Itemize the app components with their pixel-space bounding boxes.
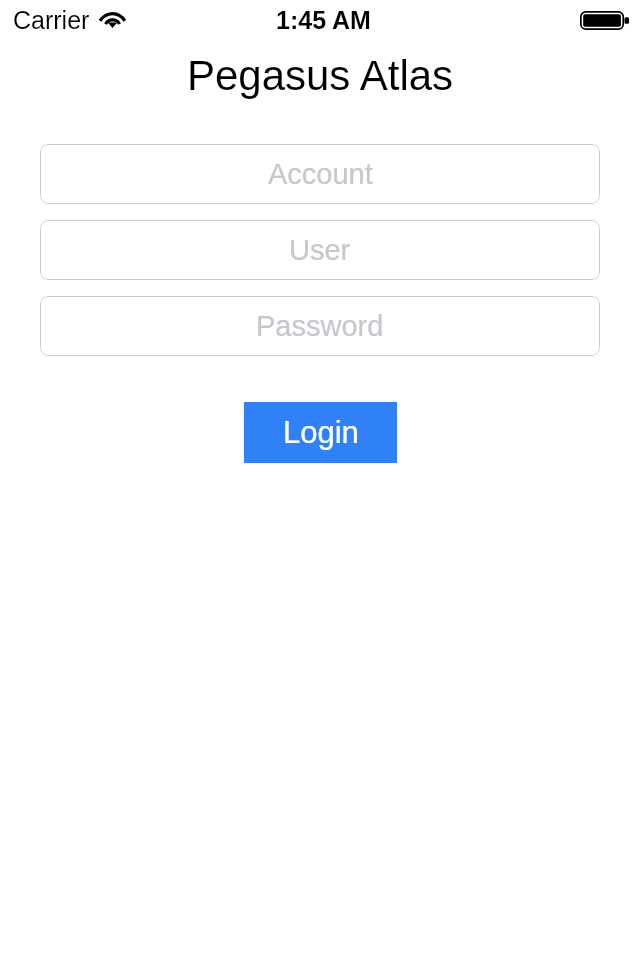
- staticText: Pegasus Atlas: [0, 52, 640, 99]
- staticText: 1:45 AM: [276, 6, 371, 34]
- staticText: User: [289, 234, 351, 266]
- staticText: Carrier: [13, 6, 90, 34]
- staticText: Account: [268, 158, 373, 190]
- staticText: Password: [256, 310, 384, 342]
- button[interactable]: Account: [40, 144, 600, 204]
- button[interactable]: Login: [244, 402, 397, 463]
- staticText: Login: [283, 415, 359, 450]
- button[interactable]: User: [40, 220, 600, 280]
- other: Wi-Fi: [101, 11, 124, 28]
- other: Battery: [580, 11, 629, 30]
- button[interactable]: Password: [40, 296, 600, 356]
